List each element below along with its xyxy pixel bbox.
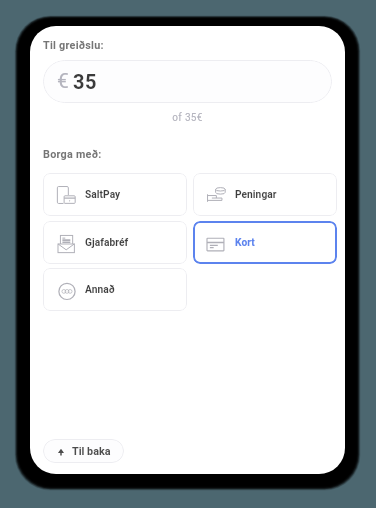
staticText: Gjafabréf	[85, 237, 129, 249]
staticText: Til baka	[72, 445, 111, 458]
button[interactable]: €	[43, 60, 332, 103]
button[interactable]: Kort	[193, 221, 337, 264]
button[interactable]: Annað	[43, 268, 187, 311]
other: Back	[57, 448, 65, 456]
staticText: Til greiðslu:	[43, 39, 104, 52]
staticText: of 35€	[30, 112, 345, 124]
staticText: €	[57, 69, 69, 94]
staticText: 35	[73, 70, 98, 93]
staticText: SaltPay	[85, 189, 121, 201]
staticText: Peningar	[235, 189, 277, 201]
button[interactable]: Gjafabréf	[43, 221, 187, 264]
staticText: Kort	[235, 237, 255, 249]
button[interactable]: SaltPay	[43, 173, 187, 216]
button[interactable]: Back	[43, 439, 124, 463]
staticText: Annað	[85, 284, 115, 296]
staticText: Borga með:	[43, 148, 102, 161]
button[interactable]: Peningar	[193, 173, 337, 216]
